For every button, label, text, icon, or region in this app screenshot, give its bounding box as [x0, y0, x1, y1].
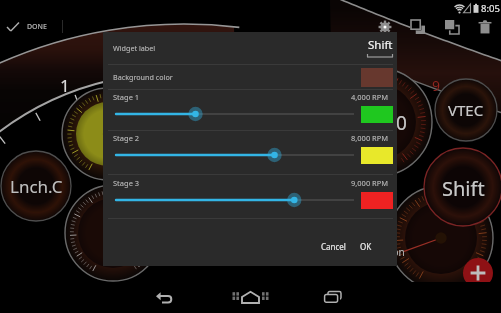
staticText: DONE	[27, 22, 47, 32]
staticText: OK	[360, 241, 372, 252]
staticText: Cancel	[321, 241, 346, 252]
button[interactable]: Back	[128, 282, 204, 313]
button[interactable]: Cancel	[318, 238, 348, 255]
button[interactable]: Copy widget	[403, 12, 433, 42]
staticText: 1	[60, 74, 70, 97]
staticText: Stage 1	[113, 92, 140, 102]
button[interactable]: Recent apps	[296, 282, 372, 313]
button[interactable]: Home	[213, 282, 289, 313]
staticText: 9,000 RPM	[351, 178, 389, 188]
button[interactable]	[110, 146, 360, 164]
button[interactable]: Settings	[370, 12, 400, 42]
button[interactable]: OK	[355, 238, 377, 255]
button[interactable]: Background color	[103, 64, 397, 89]
staticText: 4,000 RPM	[351, 92, 389, 102]
staticText: Shift	[442, 175, 485, 199]
button[interactable]	[110, 105, 360, 123]
staticText: Shift	[368, 37, 393, 53]
button[interactable]: Delete widget	[470, 12, 500, 42]
staticText: Stage 2	[113, 133, 140, 143]
button[interactable]: Add widget	[463, 258, 493, 288]
staticText: VTEC	[448, 100, 484, 120]
staticText: Background color	[113, 72, 173, 82]
staticText: 0	[396, 110, 407, 134]
staticText: Lnch.C	[10, 175, 63, 198]
button[interactable]	[110, 191, 360, 209]
staticText: 9	[432, 76, 441, 95]
staticText: 8,000 RPM	[351, 133, 389, 143]
staticText: Stage 3	[113, 178, 140, 188]
staticText: 8:05	[481, 2, 500, 15]
staticText: Ignition	[368, 245, 405, 259]
button[interactable]: Duplicate widget	[437, 12, 467, 42]
staticText: Widget label	[113, 43, 156, 53]
button[interactable]: DONE	[6, 12, 47, 42]
button[interactable]: Shift	[361, 36, 393, 62]
